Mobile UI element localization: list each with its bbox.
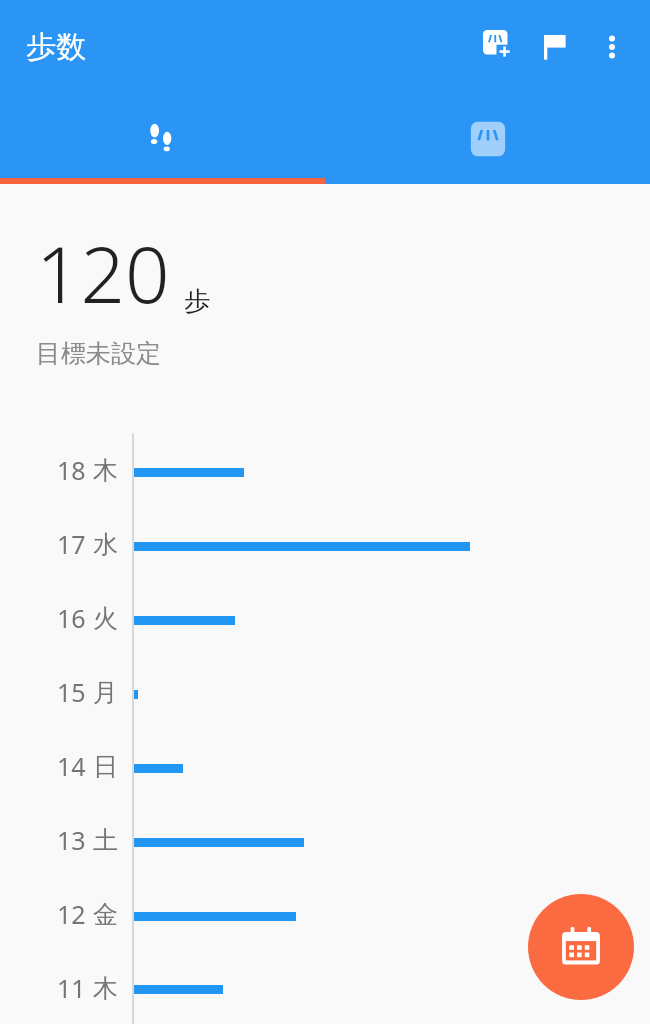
staticText: 13	[57, 823, 86, 857]
staticText: 歩数	[26, 28, 86, 66]
button[interactable]: 13	[0, 803, 650, 877]
button[interactable]: 16	[0, 581, 650, 655]
button[interactable]: カレンダー	[528, 894, 634, 1000]
button[interactable]: 歩数タブ	[0, 93, 325, 184]
staticText: 17	[57, 527, 86, 561]
staticText: 目標未設定	[36, 338, 161, 369]
button[interactable]: 14	[0, 729, 650, 803]
staticText: 12	[57, 897, 86, 931]
staticText: 18	[57, 453, 86, 487]
button[interactable]: その他のオプション	[584, 19, 640, 75]
staticText: 木	[93, 455, 118, 486]
staticText: 16	[57, 601, 86, 635]
staticText: 木	[93, 973, 118, 1004]
button[interactable]: 18	[0, 433, 650, 507]
staticText: 水	[93, 529, 118, 560]
staticText: 月	[93, 677, 118, 708]
staticText: 15	[57, 675, 86, 709]
staticText: 土	[93, 825, 118, 856]
button[interactable]: 12	[0, 877, 650, 951]
button[interactable]: 体重を記録	[472, 19, 528, 75]
staticText: 14	[57, 749, 86, 783]
staticText: 歩	[184, 285, 210, 318]
staticText: 11	[57, 971, 86, 1005]
button[interactable]: 15	[0, 655, 650, 729]
button[interactable]: 11	[0, 951, 650, 1024]
staticText: 日	[93, 751, 118, 782]
button[interactable]: 17	[0, 507, 650, 581]
button[interactable]: 体重タブ	[325, 93, 650, 184]
button[interactable]: 目標	[528, 19, 584, 75]
staticText: 金	[93, 899, 118, 930]
staticText: 120	[36, 220, 170, 326]
staticText: 火	[93, 603, 118, 634]
